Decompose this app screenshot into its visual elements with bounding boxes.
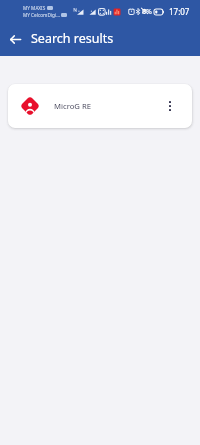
staticText: MY CelcomDigi...	[23, 12, 60, 18]
button[interactable]: Back	[3, 27, 27, 51]
staticText: 8%	[142, 7, 152, 17]
staticText: MicroG RE	[54, 101, 91, 111]
button[interactable]: MicroG RE	[8, 84, 192, 128]
button[interactable]: More options	[157, 93, 183, 119]
staticText: MY MAXIS	[23, 5, 46, 11]
staticText: Search results	[31, 30, 114, 47]
staticText: 17:07	[169, 6, 190, 17]
